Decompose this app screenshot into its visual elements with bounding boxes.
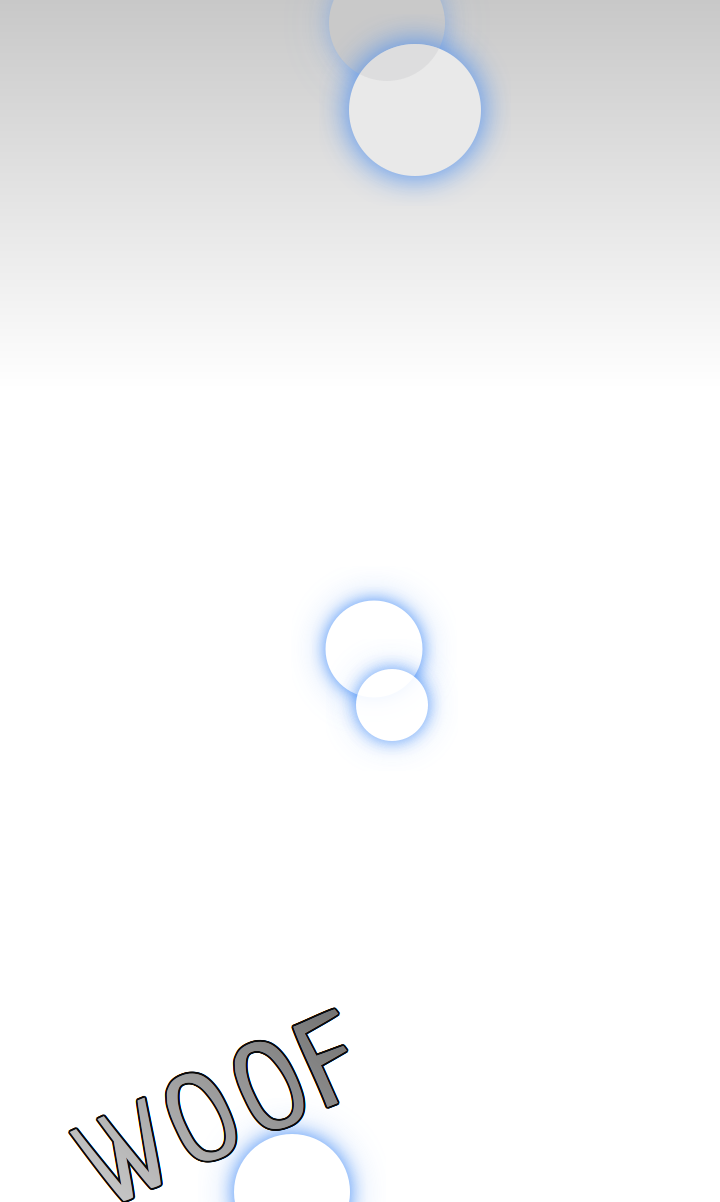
staticText: WOOF	[78, 1055, 372, 1185]
staticText: WOOF	[81, 1058, 375, 1187]
staticText: WOOF	[78, 1057, 372, 1186]
staticText: WOOF	[79, 1058, 373, 1187]
staticText: WOOF	[80, 1058, 374, 1188]
staticText: WOOF	[81, 1055, 375, 1184]
staticText: WOOF	[79, 1055, 373, 1184]
staticText: WOOF	[78, 1057, 372, 1187]
staticText: WOOF	[81, 1055, 375, 1185]
staticText: WOOF	[78, 1056, 372, 1185]
staticText: WOOF	[82, 1057, 376, 1186]
staticText: WOOF	[78, 1056, 372, 1186]
staticText: WOOF	[82, 1056, 376, 1186]
staticText: WOOF	[81, 1055, 375, 1184]
staticText: WOOF	[79, 1055, 373, 1184]
staticText: WOOF	[81, 1057, 375, 1187]
staticText: WOOF	[79, 1058, 373, 1187]
staticText: WOOF	[80, 1054, 374, 1184]
staticText: WOOF	[81, 1058, 375, 1187]
staticText: WOOF	[80, 1056, 374, 1186]
staticText: WOOF	[82, 1056, 376, 1185]
